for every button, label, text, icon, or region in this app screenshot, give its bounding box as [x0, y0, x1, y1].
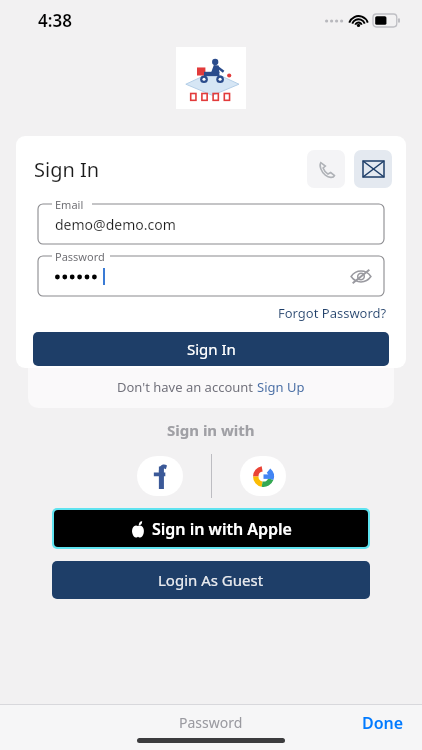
button[interactable]: Sign in with Facebook: [137, 456, 183, 496]
button[interactable]: Forgot Password?: [276, 302, 389, 324]
button[interactable]: Done: [362, 712, 422, 734]
staticText: Sign In: [187, 339, 236, 359]
staticText: Password: [55, 249, 105, 264]
button[interactable]: Sign In: [33, 332, 389, 366]
staticText: Sign in with Apple: [152, 518, 292, 540]
staticText: Sign In: [34, 156, 100, 183]
staticText: Sign in with: [167, 420, 255, 440]
staticText: demo@demo.com: [55, 215, 176, 234]
staticText: Email: [55, 197, 84, 212]
staticText: Don't have an account: [117, 378, 257, 396]
button[interactable]: Don't have an account: [117, 378, 305, 396]
staticText: Sign Up: [257, 378, 305, 396]
button[interactable]: Sign in with Apple: [54, 510, 368, 547]
button[interactable]: Login As Guest: [52, 561, 370, 599]
button[interactable]: Sign in with email: [354, 150, 392, 188]
staticText: Login As Guest: [158, 570, 264, 590]
staticText: 4:38: [38, 9, 72, 32]
staticText: Password: [179, 713, 243, 732]
button[interactable]: Sign in with phone: [307, 150, 345, 188]
button[interactable]: Show password: [348, 263, 374, 289]
button[interactable]: Sign in with Google: [240, 456, 286, 496]
